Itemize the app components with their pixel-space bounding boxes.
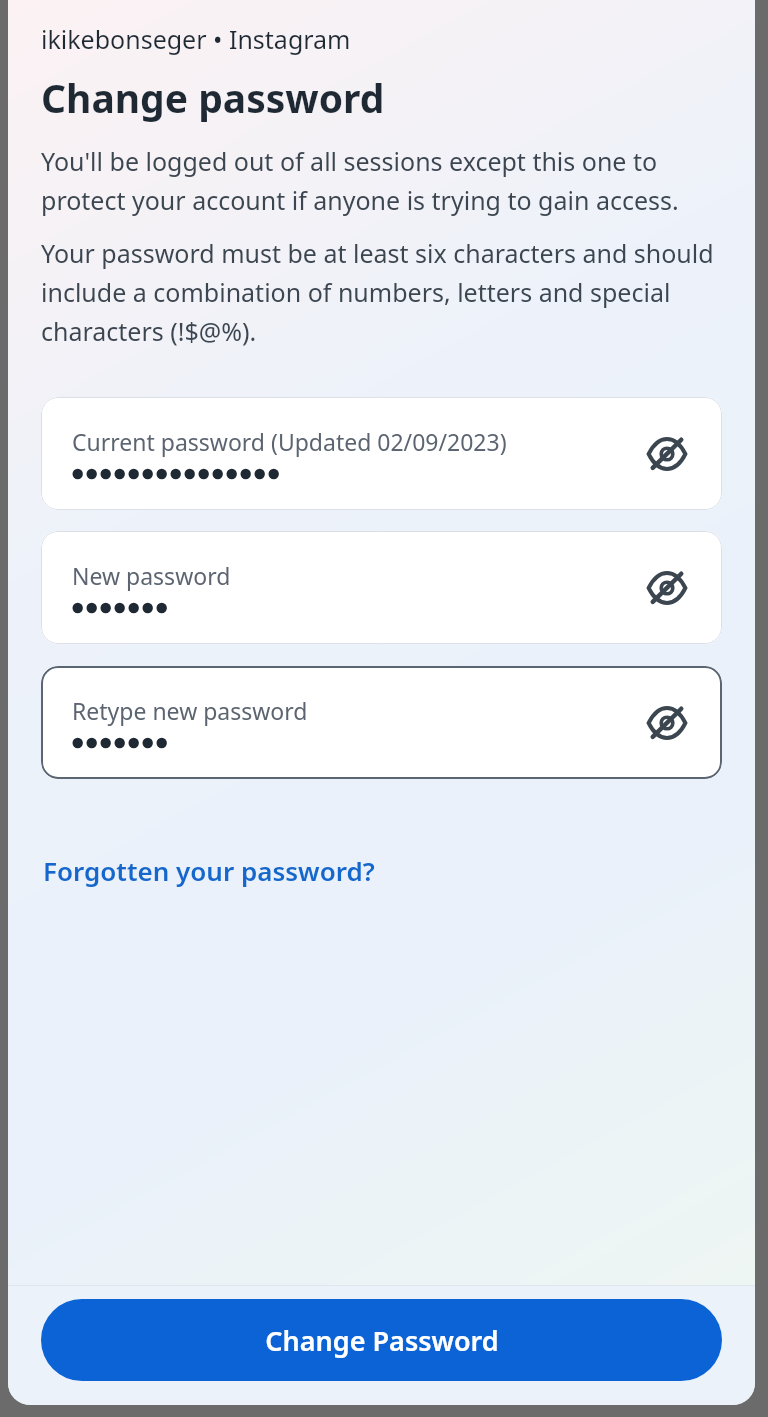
button[interactable]: Retype new password — [41, 666, 722, 779]
staticText: New password — [72, 560, 231, 591]
staticText: Change Password — [265, 1322, 499, 1359]
staticText: You'll be logged out of all sessions exc… — [41, 144, 719, 217]
staticText: ikikebonseger • Instagram — [41, 22, 351, 56]
staticText: Retype new password — [72, 695, 308, 726]
button[interactable]: Show password — [636, 557, 698, 619]
button[interactable]: Show password — [636, 423, 698, 485]
staticText: Forgotten your password? — [43, 853, 375, 888]
button[interactable]: Current password (Updated 02/09/2023) — [41, 397, 722, 510]
button[interactable]: Forgotten your password? — [41, 849, 377, 892]
staticText: Change password — [41, 71, 385, 124]
button[interactable]: Show password — [636, 692, 698, 754]
staticText: Your password must be at least six chara… — [41, 236, 725, 348]
button[interactable]: Change Password — [41, 1299, 722, 1381]
staticText: Current password (Updated 02/09/2023) — [72, 426, 507, 457]
button[interactable]: New password — [41, 531, 722, 644]
